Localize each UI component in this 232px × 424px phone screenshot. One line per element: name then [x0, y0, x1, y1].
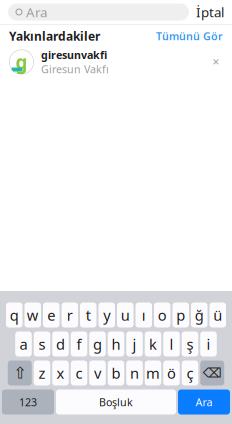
staticText: ı [142, 305, 146, 325]
staticText: Yakınlardakiler [9, 28, 100, 44]
staticText: ✕ [212, 57, 220, 67]
staticText: ğ [195, 305, 204, 325]
button[interactable]: Tümünü Gör [156, 29, 223, 43]
staticText: İptal [196, 3, 224, 21]
staticText: l [169, 334, 173, 354]
staticText: h [111, 334, 120, 354]
button[interactable]: m [145, 360, 161, 385]
staticText: u [121, 305, 130, 325]
staticText: g [15, 50, 27, 74]
staticText: Boşluk [99, 395, 133, 409]
button[interactable]: k [145, 331, 161, 356]
button[interactable]: r [61, 302, 78, 327]
button[interactable]: İptal [196, 3, 224, 20]
staticText: ⇧ [13, 364, 26, 382]
staticText: r [67, 305, 73, 325]
button[interactable]: y [98, 302, 115, 327]
staticText: ö [167, 363, 176, 383]
staticText: a [19, 334, 27, 354]
staticText: y [103, 305, 110, 325]
staticText: z [38, 363, 45, 383]
staticText: Tümünü Gör [156, 29, 223, 43]
staticText: g [93, 334, 102, 354]
button[interactable]: h [108, 331, 124, 356]
staticText: n [130, 363, 139, 383]
button[interactable]: Shift [8, 360, 32, 385]
staticText: d [56, 334, 65, 354]
staticText: 123 [19, 395, 37, 409]
staticText: b [111, 363, 120, 383]
button[interactable]: d [52, 331, 69, 356]
button[interactable]: q [6, 302, 22, 327]
staticText: m [146, 363, 160, 383]
staticText: Ara [26, 3, 47, 21]
staticText: k [149, 334, 157, 354]
staticText: giresunvakfi [41, 48, 107, 62]
staticText: ü [213, 305, 222, 325]
button[interactable]: x [52, 360, 69, 385]
button[interactable]: ş [182, 331, 198, 356]
staticText: p [176, 305, 185, 325]
button[interactable]: Ara [178, 389, 230, 414]
button[interactable]: v [89, 360, 106, 385]
button[interactable]: b [108, 360, 124, 385]
staticText: o [158, 305, 167, 325]
button[interactable]: o [154, 302, 170, 327]
button[interactable]: s [34, 331, 50, 356]
staticText: w [27, 305, 39, 325]
staticText: Giresun Vakfı [41, 62, 109, 76]
staticText: e [47, 305, 55, 325]
button[interactable]: i [200, 331, 217, 356]
button[interactable]: ı [135, 302, 152, 327]
button[interactable]: n [126, 360, 143, 385]
staticText: ş [186, 334, 193, 354]
button[interactable]: Boşluk [56, 389, 176, 414]
staticText: t [86, 305, 91, 325]
staticText: i [206, 334, 210, 354]
staticText: Ara [195, 395, 212, 409]
button[interactable]: e [43, 302, 59, 327]
staticText: q [10, 305, 19, 325]
staticText: s [38, 334, 45, 354]
button[interactable]: g [0, 47, 232, 77]
button[interactable]: u [117, 302, 133, 327]
button[interactable]: Search [8, 3, 189, 20]
button[interactable]: l [163, 331, 180, 356]
button[interactable]: ğ [191, 302, 207, 327]
button[interactable]: z [34, 360, 50, 385]
staticText: x [56, 363, 64, 383]
staticText: c [75, 363, 82, 383]
button[interactable]: Delete [200, 360, 224, 385]
button[interactable]: g [89, 331, 106, 356]
button[interactable]: c [71, 360, 87, 385]
button[interactable]: f [71, 331, 87, 356]
staticText: j [132, 334, 136, 354]
button[interactable]: a [15, 331, 32, 356]
button[interactable]: ç [182, 360, 198, 385]
button[interactable]: j [126, 331, 143, 356]
button[interactable]: p [172, 302, 189, 327]
staticText: ç [186, 363, 193, 383]
button[interactable]: 123 [2, 389, 54, 414]
button[interactable]: ö [163, 360, 180, 385]
button[interactable]: t [80, 302, 96, 327]
staticText: ⌫ [203, 365, 222, 380]
button[interactable]: w [24, 302, 41, 327]
staticText: f [76, 334, 81, 354]
staticText: v [94, 363, 101, 383]
button[interactable]: ü [209, 302, 226, 327]
